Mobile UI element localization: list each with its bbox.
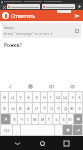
staticText: С	[27, 117, 30, 122]
staticText: Ь	[55, 117, 58, 122]
staticText: Кому:	[4, 25, 14, 30]
staticText: Е	[36, 95, 38, 100]
button[interactable]: В	[17, 103, 24, 113]
staticText: В	[19, 106, 22, 111]
staticText: Ы	[11, 106, 15, 111]
button[interactable]: Home	[35, 136, 49, 150]
staticText: М	[33, 117, 37, 122]
staticText: Э	[78, 106, 81, 111]
button[interactable]: Д	[62, 103, 68, 113]
button[interactable]: Shift	[1, 114, 10, 124]
staticText: Ш	[56, 95, 60, 100]
staticText: 123	[3, 128, 10, 133]
staticText: Ч	[20, 117, 23, 122]
button[interactable]: И	[39, 114, 45, 124]
button[interactable]: Й	[1, 92, 8, 102]
staticText: Щ	[63, 95, 67, 100]
button[interactable]: Ц	[9, 92, 16, 102]
button[interactable]: Photo	[41, 81, 62, 91]
button[interactable]	[42, 4, 75, 9]
button[interactable]: Emoji	[20, 81, 41, 91]
button[interactable]: Я	[11, 114, 17, 124]
button[interactable]	[7, 4, 40, 9]
staticText: И	[41, 117, 44, 122]
button[interactable]: Backspace	[74, 114, 82, 124]
button[interactable]: 123	[1, 125, 12, 135]
button[interactable]: Е	[33, 92, 40, 102]
button[interactable]: Back	[10, 136, 24, 150]
staticText: Д	[64, 106, 67, 111]
button[interactable]: Кому:	[2, 23, 81, 38]
button[interactable]: Send	[72, 11, 81, 20]
button[interactable]: К	[25, 92, 32, 102]
button[interactable]: .	[55, 125, 62, 135]
staticText: Й	[3, 95, 6, 100]
button[interactable]: Toggle	[75, 29, 79, 33]
button[interactable]: Н	[41, 92, 47, 102]
button[interactable]: Ь	[53, 114, 59, 124]
button[interactable]: Ф	[1, 103, 8, 113]
button[interactable]: Ответить	[11, 12, 72, 19]
button[interactable]: Ш	[55, 92, 61, 102]
staticText: А вот "message" то и нет :)	[4, 31, 53, 36]
button[interactable]: О	[48, 103, 54, 113]
staticText: Ц	[11, 95, 14, 100]
staticText: З	[71, 95, 74, 100]
staticText: Ж	[70, 106, 74, 111]
button[interactable]: Х	[76, 92, 82, 102]
button[interactable]: З	[69, 92, 75, 102]
button[interactable]: Emoji	[63, 125, 72, 135]
button[interactable]: ,	[13, 125, 20, 135]
staticText: Ф	[3, 106, 6, 111]
button[interactable]: М	[32, 114, 38, 124]
button[interactable]: А	[25, 103, 32, 113]
staticText: ,	[16, 128, 17, 133]
staticText: Н	[43, 95, 46, 100]
button[interactable]: Б	[60, 114, 66, 124]
staticText: Рожев?	[4, 42, 22, 49]
staticText: Б	[62, 117, 65, 122]
button[interactable]: Enter	[73, 125, 82, 135]
staticText: Л	[57, 106, 60, 111]
button[interactable]: Ч	[18, 114, 24, 124]
button[interactable]: Mail logo	[2, 12, 9, 19]
button[interactable]: Т	[46, 114, 52, 124]
button[interactable]: Л	[55, 103, 61, 113]
button[interactable]: Ю	[67, 114, 73, 124]
staticText: А	[27, 106, 30, 111]
button[interactable]: Щ	[62, 92, 68, 102]
staticText: Я	[13, 117, 16, 122]
staticText: П	[35, 106, 38, 111]
button[interactable]: С	[25, 114, 31, 124]
button[interactable]: П	[33, 103, 40, 113]
button[interactable]: Close tab	[2, 5, 6, 9]
staticText: Ответить	[11, 12, 36, 19]
staticText: Ю	[68, 117, 72, 122]
button[interactable]: У	[17, 92, 24, 102]
staticText: К	[27, 95, 30, 100]
button[interactable]: New tab	[77, 4, 82, 9]
button[interactable]: Attach	[0, 81, 20, 91]
button[interactable]: Р	[41, 103, 47, 113]
button[interactable]: Ы	[9, 103, 16, 113]
staticText: У	[19, 95, 22, 100]
staticText: Р	[43, 106, 46, 111]
staticText: .	[58, 128, 59, 133]
staticText: Г	[50, 95, 52, 100]
staticText: Т	[48, 117, 50, 122]
button[interactable]: Ж	[69, 103, 75, 113]
staticText: Х	[78, 95, 81, 100]
button[interactable]: Recents	[59, 136, 73, 150]
staticText: О	[50, 106, 53, 111]
button[interactable]: Э	[76, 103, 82, 113]
button[interactable]: Г	[48, 92, 54, 102]
button[interactable]: Camera	[62, 81, 83, 91]
